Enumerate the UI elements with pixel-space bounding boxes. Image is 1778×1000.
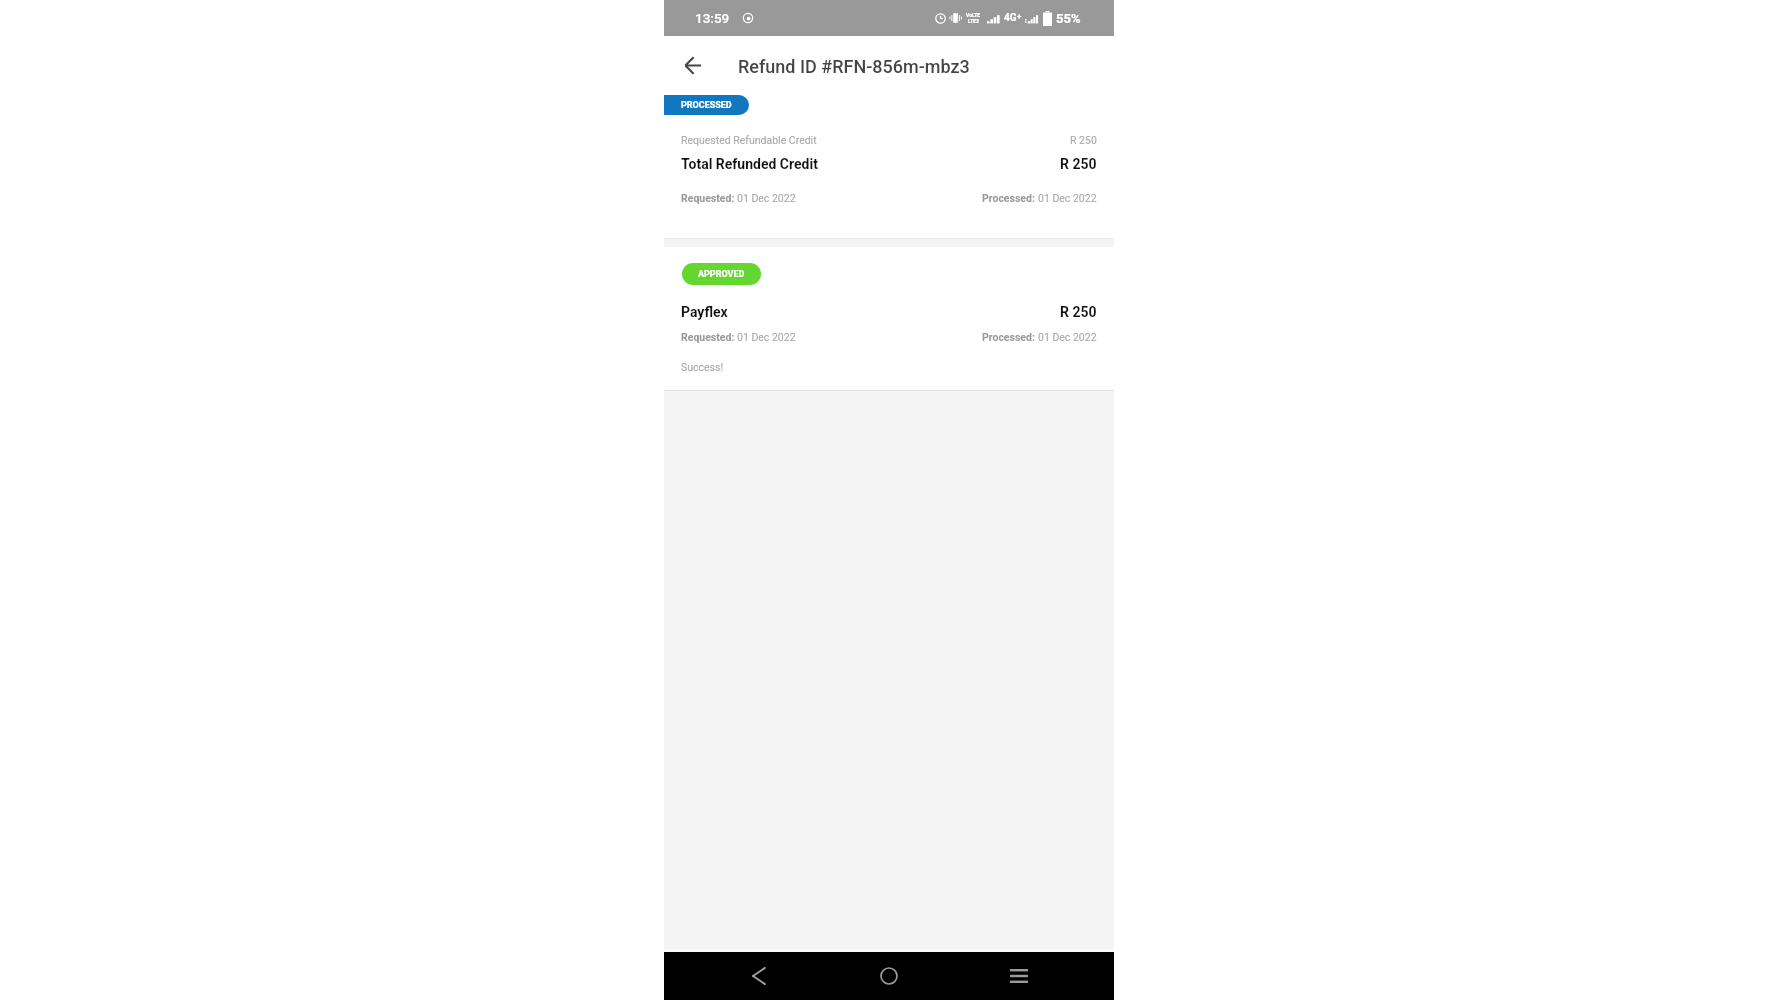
button[interactable]: Back — [736, 954, 780, 998]
staticText: Refund ID #RFN-856m-mbz3 — [738, 56, 970, 77]
button[interactable]: APPROVED — [682, 263, 761, 285]
staticText: 01 Dec 2022 — [1038, 331, 1097, 343]
staticText: Requested: — [681, 192, 737, 204]
staticText: PROCESSED — [681, 100, 732, 111]
staticText: Payflex — [681, 304, 728, 320]
button[interactable]: Recent apps — [997, 954, 1041, 998]
staticText: + — [1017, 12, 1022, 21]
button[interactable]: PROCESSED — [664, 95, 749, 115]
button[interactable]: Back — [675, 47, 711, 83]
staticText: 4G — [1004, 12, 1017, 24]
staticText: 01 Dec 2022 — [1038, 192, 1097, 204]
staticText: Requested: — [681, 331, 737, 343]
staticText: VoLTE — [966, 12, 981, 18]
staticText: Success! — [681, 361, 724, 373]
staticText: LTE3 — [968, 18, 979, 24]
staticText: Processed: — [982, 192, 1038, 204]
staticText: Requested Refundable Credit — [681, 134, 817, 146]
staticText: R 250 — [1060, 156, 1097, 172]
staticText: 01 Dec 2022 — [737, 192, 796, 204]
staticText: 55% — [1056, 11, 1081, 26]
button[interactable]: Home — [867, 954, 911, 998]
staticText: Total Refunded Credit — [681, 156, 818, 172]
staticText: R 250 — [1070, 134, 1097, 146]
staticText: R 250 — [1060, 304, 1097, 320]
staticText: Processed: — [982, 331, 1038, 343]
staticText: 13:59 — [695, 10, 730, 26]
staticText: 01 Dec 2022 — [737, 331, 796, 343]
staticText: APPROVED — [698, 269, 745, 280]
